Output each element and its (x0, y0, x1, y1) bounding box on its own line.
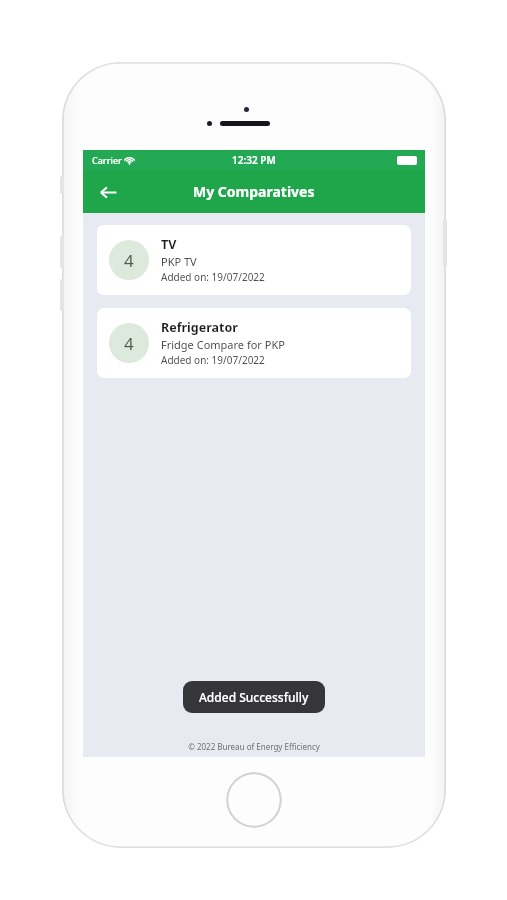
staticText: 4 (124, 332, 134, 355)
staticText: Added Successfully (199, 689, 309, 705)
staticText: PKP TV (161, 254, 197, 269)
staticText: Refrigerator (161, 319, 238, 336)
staticText: Carrier (92, 154, 122, 166)
staticText: Added on: 19/07/2022 (161, 270, 265, 284)
button[interactable]: Back (91, 175, 125, 209)
button[interactable]: 4 (97, 225, 411, 295)
staticText: My Comparatives (193, 182, 315, 201)
button[interactable]: 4 (97, 308, 411, 378)
staticText: Added on: 19/07/2022 (161, 353, 265, 367)
button[interactable]: Added Successfully (183, 681, 325, 713)
button[interactable]: Home (226, 772, 282, 828)
staticText: TV (161, 236, 177, 253)
staticText: 12:32 PM (232, 153, 276, 167)
staticText: © 2022 Bureau of Energy Efficiency (188, 741, 320, 752)
staticText: Fridge Compare for PKP (161, 337, 285, 352)
staticText: 4 (124, 249, 134, 272)
